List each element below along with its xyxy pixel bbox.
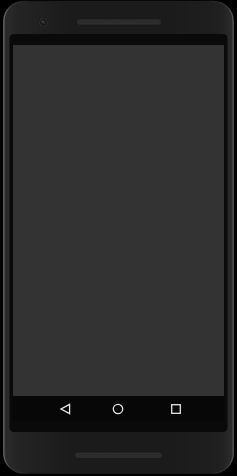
button[interactable]: Recent apps (159, 396, 193, 422)
button[interactable]: Back (49, 396, 83, 422)
button[interactable]: Home (101, 396, 135, 422)
